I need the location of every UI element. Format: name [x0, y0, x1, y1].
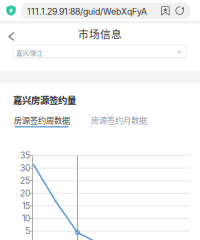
button[interactable]: Region filter	[13, 45, 186, 58]
staticText: 35	[20, 150, 30, 161]
staticText: 嘉兴房源签约量	[13, 93, 76, 106]
staticText: 15	[22, 201, 30, 211]
button[interactable]: Site security	[6, 5, 16, 16]
staticText: 111.1.29.91:88/guid/WebXqFyA	[27, 6, 147, 17]
staticText: 房源签约月数据	[91, 114, 147, 126]
staticText: 嘉兴/浙江	[16, 48, 42, 57]
staticText: 20	[20, 188, 30, 198]
button[interactable]: Address bar	[21, 2, 190, 19]
button[interactable]: 房源签约周数据	[14, 114, 70, 128]
staticText: 房源签约周数据	[14, 114, 70, 126]
staticText: 10	[22, 213, 30, 224]
staticText: 25	[20, 175, 30, 186]
staticText: 30	[20, 163, 30, 173]
staticText: 5	[25, 226, 30, 236]
button[interactable]: 房源签约月数据	[91, 114, 147, 128]
button[interactable]: Back	[0, 26, 22, 47]
staticText: 市场信息	[78, 26, 122, 41]
